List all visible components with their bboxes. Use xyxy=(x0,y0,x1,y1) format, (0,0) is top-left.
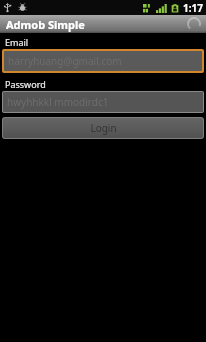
staticText: 1:17 xyxy=(183,1,203,15)
staticText: Login xyxy=(90,121,117,135)
button[interactable]: harryhuang@gmail.com xyxy=(4,51,202,71)
staticText: Email xyxy=(5,36,29,48)
staticText: hwyhhkkl mmodirdc1 xyxy=(7,95,109,109)
button[interactable]: Login xyxy=(3,118,203,138)
staticText: harryhuang@gmail.com xyxy=(8,54,122,68)
staticText: Password xyxy=(5,78,46,90)
button[interactable]: hwyhhkkl mmodirdc1 xyxy=(3,92,203,112)
staticText: Admob Simple xyxy=(6,17,85,32)
